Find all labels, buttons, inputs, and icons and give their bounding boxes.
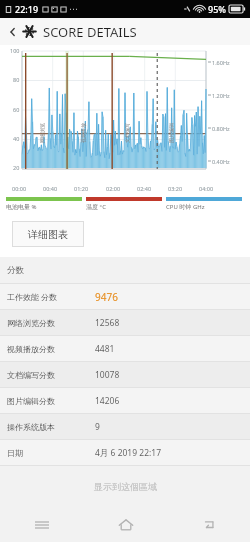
staticText: 00:00 bbox=[12, 185, 27, 192]
staticText: 0.80Hz bbox=[212, 125, 230, 132]
staticText: 9 bbox=[95, 421, 100, 433]
staticText: 14206 bbox=[95, 395, 120, 407]
staticText: SCORE DETAILS bbox=[43, 23, 137, 41]
staticText: 00:40 bbox=[43, 185, 58, 192]
staticText: 02:40 bbox=[137, 185, 152, 192]
staticText: 图片编辑分数 bbox=[7, 396, 55, 406]
button[interactable]: 工作效能 分数 bbox=[0, 284, 250, 309]
staticText: 1.60Hz bbox=[212, 59, 230, 66]
staticText: 10078 bbox=[95, 369, 120, 381]
staticText: 02:00 bbox=[106, 185, 121, 192]
staticText: 视频播放 bbox=[80, 123, 86, 143]
staticText: 01:20 bbox=[74, 185, 89, 192]
staticText: 文档编写分数 bbox=[7, 370, 55, 380]
staticText: 详细图表 bbox=[28, 228, 68, 241]
button[interactable]: Recents bbox=[0, 508, 84, 542]
button[interactable]: 网络浏览分数 bbox=[0, 310, 250, 335]
staticText: 80 bbox=[13, 76, 20, 83]
staticText: 操作系统版本 bbox=[7, 422, 55, 432]
staticText: 日期 bbox=[7, 448, 23, 458]
staticText: 40 bbox=[13, 135, 20, 142]
staticText: 95% bbox=[208, 3, 226, 15]
staticText: 工作效能 分数 bbox=[7, 291, 58, 302]
staticText: CPU 时钟 GHz bbox=[166, 203, 205, 211]
staticText: ⋯ bbox=[69, 4, 78, 14]
staticText: 60 bbox=[13, 106, 20, 113]
staticText: 4月 6 2019 22:17 bbox=[95, 447, 162, 459]
staticText: 显示到这個區域 bbox=[94, 481, 157, 492]
staticText: 网络浏览分数 bbox=[7, 318, 55, 328]
staticText: 04:00 bbox=[199, 185, 214, 192]
staticText: 03:20 bbox=[168, 185, 183, 192]
staticText: 12568 bbox=[95, 317, 120, 329]
staticText: 0.40Hz bbox=[212, 158, 230, 165]
staticText: 网络浏览 bbox=[39, 123, 45, 143]
staticText: 9476 bbox=[95, 290, 118, 304]
staticText: 100 bbox=[10, 47, 20, 54]
button[interactable]: Home bbox=[84, 508, 167, 542]
staticText: 图片编辑 bbox=[168, 123, 174, 143]
staticText: 分数 bbox=[7, 265, 24, 276]
button[interactable]: 视频播放分数 bbox=[0, 336, 250, 361]
button[interactable]: 日期 bbox=[0, 440, 250, 465]
staticText: 温度 °C bbox=[86, 203, 106, 211]
staticText: 20 bbox=[13, 164, 20, 171]
staticText: 1.20Hz bbox=[212, 92, 230, 99]
staticText: 4481 bbox=[95, 343, 115, 355]
staticText: 文档编写 bbox=[124, 123, 130, 143]
staticText: 视频播放分数 bbox=[7, 344, 55, 354]
button[interactable]: 图片编辑分数 bbox=[0, 388, 250, 413]
button[interactable]: 操作系统版本 bbox=[0, 414, 250, 439]
button[interactable]: Back bbox=[4, 23, 22, 41]
button[interactable]: 详细图表 bbox=[12, 221, 84, 247]
staticText: 电池电量 % bbox=[6, 203, 37, 211]
button[interactable]: Back bbox=[167, 508, 250, 542]
staticText: 22:19 bbox=[15, 3, 39, 15]
button[interactable]: 文档编写分数 bbox=[0, 362, 250, 387]
